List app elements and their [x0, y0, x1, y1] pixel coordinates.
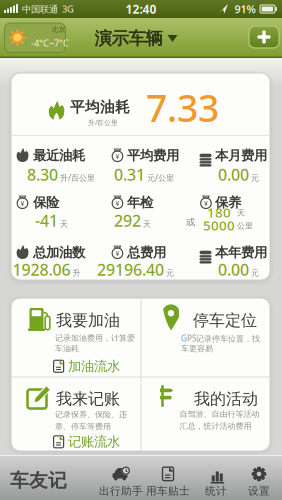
staticText: 北京: [51, 25, 65, 34]
staticText: 天: [237, 208, 245, 218]
staticText: 平均油耗: [70, 98, 130, 116]
staticText: 0.00: [218, 164, 249, 185]
staticText: 天: [60, 219, 68, 229]
button[interactable]: 出行助手: [96, 465, 146, 499]
staticText: 升/百公里: [60, 172, 95, 183]
staticText: 记录保养、保险、违: [55, 410, 127, 419]
staticText: ¥: [115, 249, 119, 258]
staticText: 或: [186, 216, 195, 228]
staticText: 章、停车等费用: [55, 422, 111, 431]
staticText: 元/公里: [147, 172, 174, 183]
button[interactable]: 演示车辆: [94, 28, 177, 49]
staticText: 平均费用: [127, 147, 179, 164]
button[interactable]: 统计: [191, 465, 241, 499]
button[interactable]: 我要加油: [11, 298, 140, 354]
staticText: 加油流水: [68, 358, 120, 374]
staticText: 我的活动: [194, 389, 258, 409]
staticText: 停车定位: [193, 311, 257, 330]
staticText: 我来记账: [56, 389, 120, 409]
button[interactable]: 停车定位: [141, 298, 270, 368]
staticText: 统计: [205, 484, 227, 497]
staticText: 0.00: [218, 259, 249, 280]
staticText: 180: [207, 203, 231, 221]
staticText: 最近油耗: [33, 147, 85, 164]
staticText: 自驾游、自由行等活动: [179, 409, 259, 419]
staticText: 7.33: [146, 83, 219, 132]
staticText: 中国联通 3G: [22, 3, 74, 15]
staticText: 演示车辆: [94, 28, 162, 49]
staticText: GPS记录停车位置，找: [181, 333, 260, 344]
staticText: 5000: [203, 216, 235, 234]
staticText: 升/百公里: [88, 118, 118, 127]
staticText: 车友记: [10, 469, 67, 492]
button[interactable]: 加油流水: [53, 358, 120, 374]
staticText: 公里: [237, 221, 253, 231]
staticText: 29196.40: [97, 259, 164, 280]
staticText: 用车贴士: [146, 484, 190, 497]
staticText: 设置: [248, 484, 270, 497]
staticText: 本年费用: [215, 244, 267, 261]
staticText: 元: [166, 268, 174, 278]
staticText: 车油耗: [55, 344, 79, 353]
staticText: 汇总，统计活动费用: [179, 421, 251, 431]
staticText: 记账流水: [68, 433, 120, 450]
staticText: ¥: [20, 199, 24, 208]
staticText: 91%: [234, 2, 255, 16]
staticText: ¥: [115, 152, 119, 161]
staticText: 保险: [33, 194, 59, 211]
staticText: 天: [143, 219, 151, 229]
button[interactable]: 我来记账: [11, 377, 140, 433]
staticText: 出行助手: [99, 484, 143, 497]
button[interactable]: 我的活动: [141, 377, 270, 447]
button[interactable]: 北京天气: [4, 23, 65, 52]
staticText: ¥: [115, 199, 119, 208]
staticText: 升: [72, 268, 80, 278]
staticText: 8.30: [27, 164, 58, 185]
staticText: ¥: [204, 199, 208, 208]
staticText: 292: [114, 210, 141, 231]
button[interactable]: 设置: [234, 465, 282, 499]
staticText: 元: [251, 173, 259, 183]
staticText: 保养: [215, 194, 241, 211]
button[interactable]: 添加车辆: [249, 26, 279, 48]
staticText: 总加油数: [33, 244, 85, 261]
staticText: 总费用: [127, 244, 166, 261]
staticText: 车更容易: [181, 344, 213, 353]
staticText: 本月费用: [215, 147, 267, 164]
staticText: 1928.06: [12, 259, 70, 280]
button[interactable]: 记账流水: [53, 433, 120, 450]
staticText: 我要加油: [56, 311, 120, 330]
staticText: 元: [251, 268, 259, 278]
staticText: -4°C~7°C: [31, 37, 69, 49]
staticText: 年检: [127, 194, 153, 211]
button[interactable]: 用车贴士: [143, 465, 193, 499]
staticText: 12:40: [125, 1, 156, 17]
staticText: 0.31: [114, 164, 145, 185]
staticText: -41: [35, 210, 58, 231]
staticText: 记录加油费用，计算爱: [55, 333, 135, 343]
